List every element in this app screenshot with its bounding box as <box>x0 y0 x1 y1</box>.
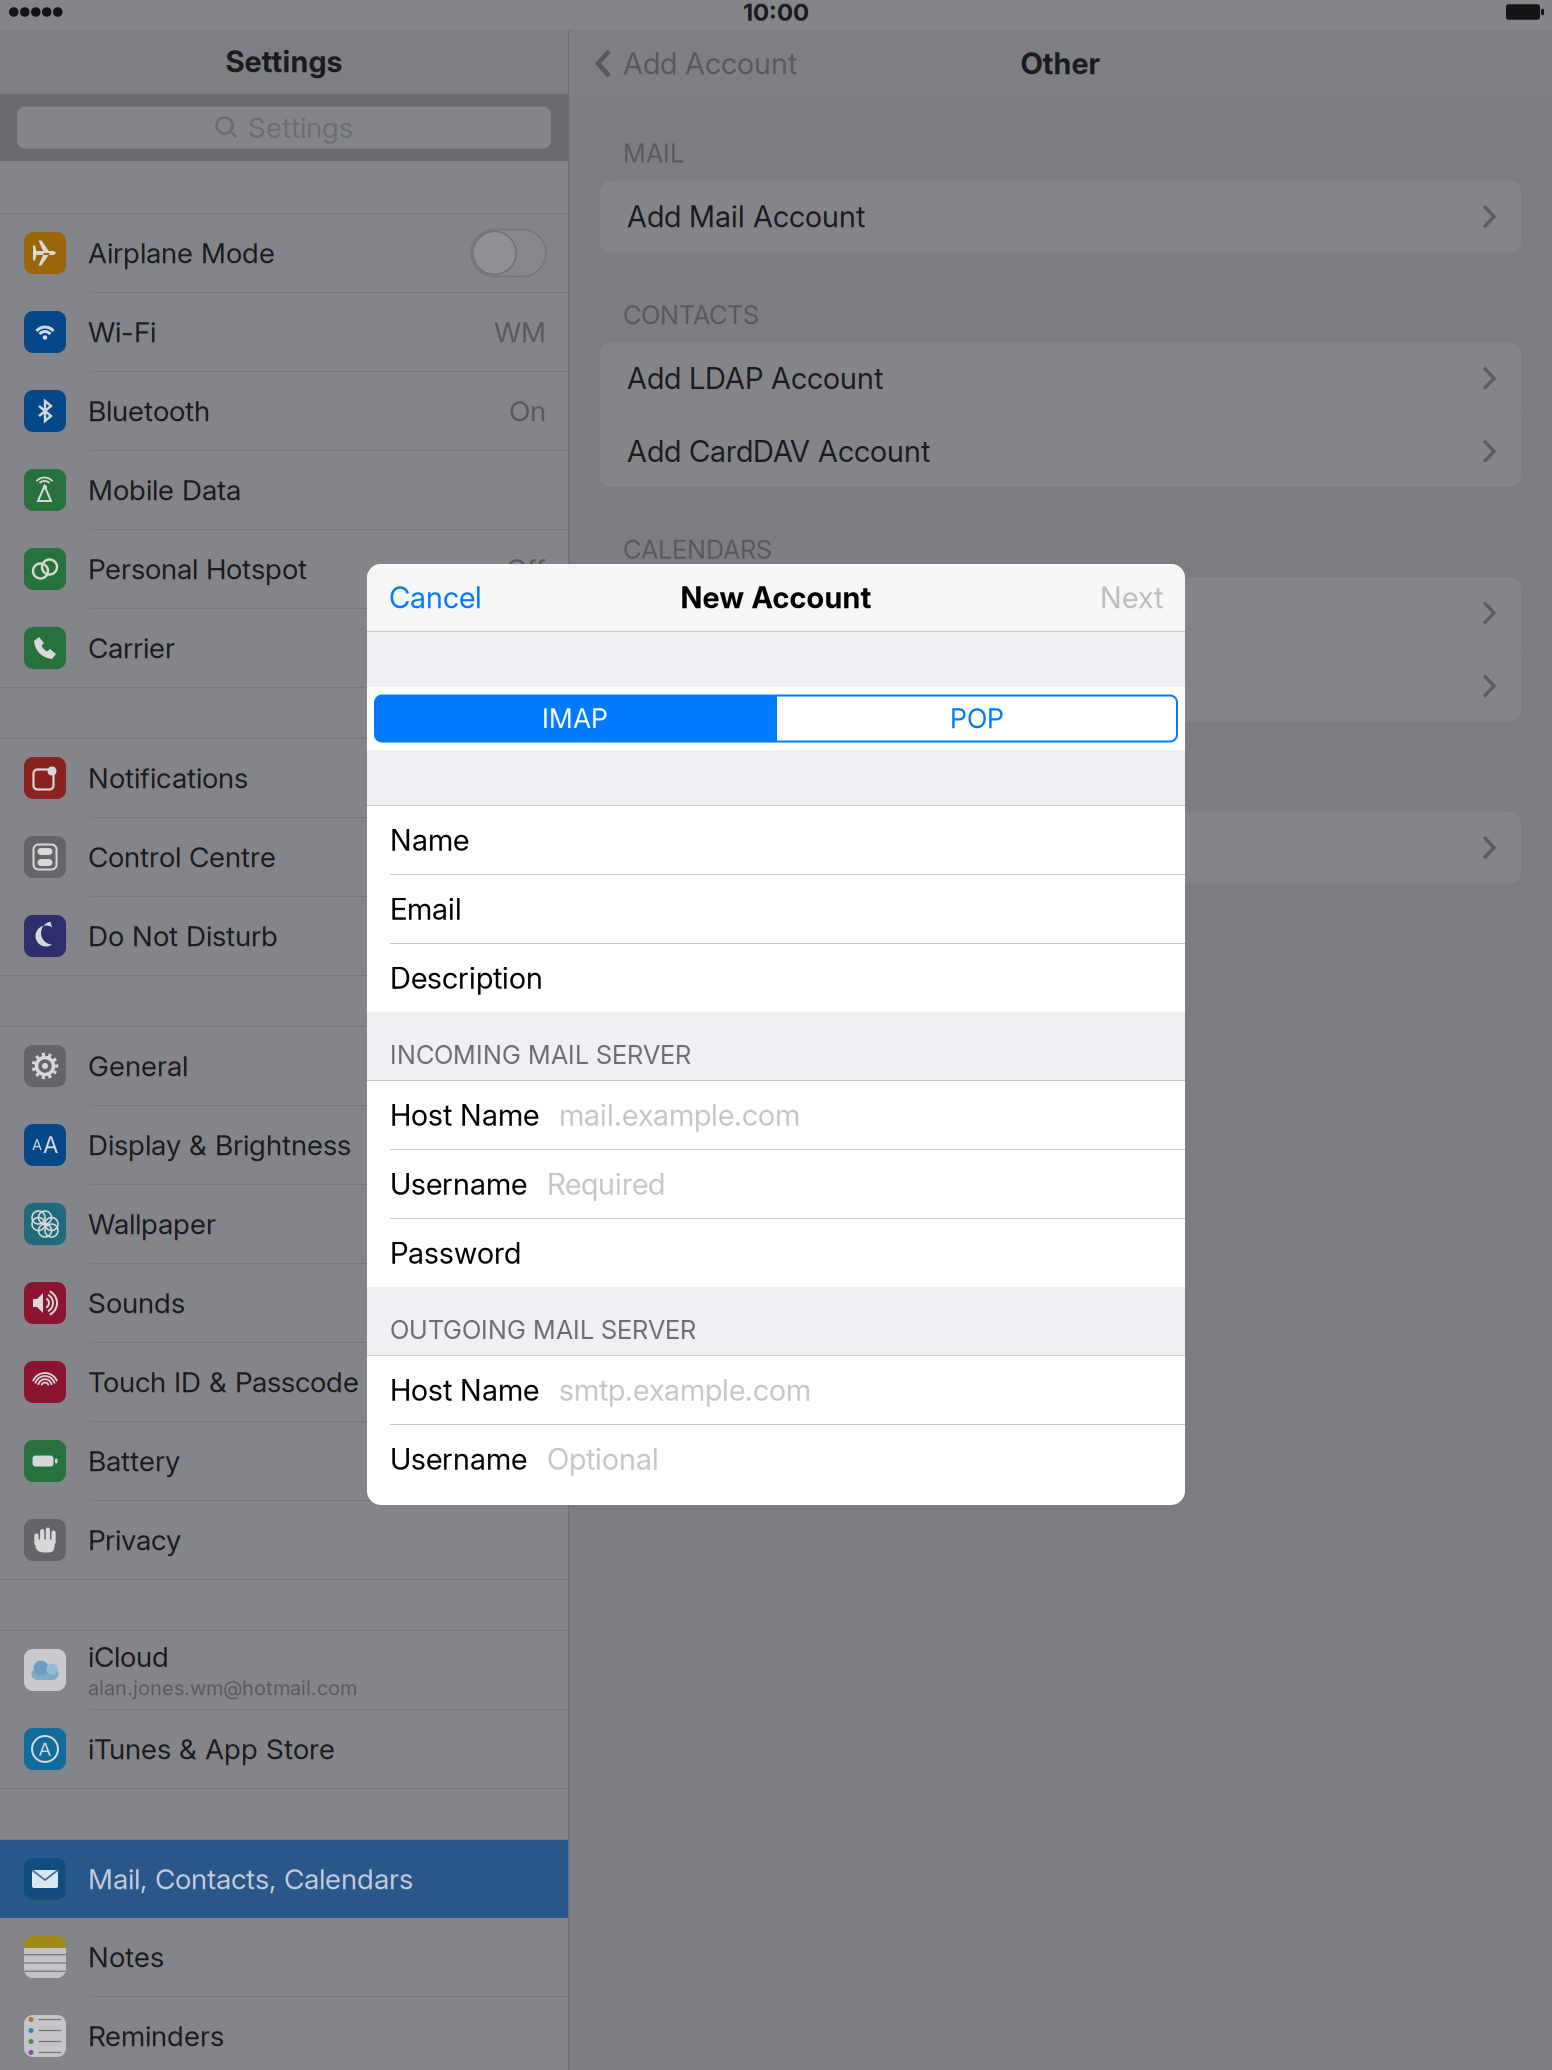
staticText: General <box>88 1049 188 1083</box>
button[interactable]: Add LDAP Account <box>600 342 1521 414</box>
staticText: Optional <box>547 1441 659 1477</box>
staticText: Do Not Disturb <box>88 919 278 953</box>
staticText: Reminders <box>88 2019 224 2053</box>
button[interactable]: A <box>0 1106 568 1184</box>
button[interactable]: Settings <box>0 94 568 161</box>
staticText: Settings <box>248 111 353 144</box>
button[interactable]: Add Subscribed Calendar <box>600 650 1521 722</box>
button[interactable]: Add macOS Server Account <box>600 812 1521 884</box>
button[interactable]: Battery <box>0 1422 568 1500</box>
staticText: Wallpaper <box>88 1207 216 1241</box>
staticText: Next <box>1100 580 1163 615</box>
staticText: Carrier <box>88 631 175 665</box>
button[interactable]: Reminders <box>0 1997 568 2070</box>
button[interactable]: A <box>0 1710 568 1788</box>
button[interactable]: POP <box>777 695 1177 741</box>
staticText: Wi-Fi <box>88 315 156 349</box>
staticText: Add Account <box>623 46 797 81</box>
button[interactable]: Privacy <box>0 1501 568 1579</box>
staticText: Username <box>390 1166 527 1202</box>
staticText: Display & Brightness <box>88 1128 351 1162</box>
staticText: Airplane Mode <box>88 236 275 270</box>
staticText: Notifications <box>88 761 248 795</box>
staticText: New Account <box>680 580 871 615</box>
staticText: Touch ID & Passcode <box>88 1365 359 1399</box>
staticText: POP <box>950 702 1004 735</box>
staticText: A <box>43 1131 58 1159</box>
staticText: IMAP <box>542 702 608 735</box>
button[interactable]: Mail, Contacts, Calendars <box>0 1840 568 1918</box>
staticText: iTunes & App Store <box>88 1732 335 1766</box>
staticText: Bluetooth <box>88 394 210 428</box>
staticText: On <box>509 394 546 428</box>
staticText: Username <box>390 1441 527 1477</box>
staticText: mail.example.com <box>559 1097 800 1133</box>
staticText: Mail, Contacts, Calendars <box>88 1862 413 1896</box>
staticText: CALENDARS <box>623 534 772 565</box>
staticText: Sounds <box>88 1286 185 1320</box>
staticText: Control Centre <box>88 840 276 874</box>
staticText: Cancel <box>389 580 482 615</box>
button[interactable]: Touch ID & Passcode <box>0 1343 568 1421</box>
button[interactable]: Control Centre <box>0 818 568 896</box>
button[interactable]: Sounds <box>0 1264 568 1342</box>
staticText: iCloud <box>88 1640 169 1674</box>
staticText: Host Name <box>390 1097 539 1133</box>
button[interactable]: Next <box>1100 566 1185 629</box>
staticText: Notes <box>88 1940 164 1974</box>
staticText: Email <box>390 891 462 927</box>
button[interactable]: Add Account <box>569 46 797 81</box>
button[interactable]: Wi-Fi <box>0 293 568 371</box>
button[interactable]: Add CalDAV Account <box>600 577 1521 649</box>
staticText: alan.jones.wm@hotmail.com <box>88 1676 357 1700</box>
staticText: smtp.example.com <box>559 1372 811 1408</box>
staticText: CONTACTS <box>623 300 759 330</box>
staticText: Privacy <box>88 1523 181 1557</box>
staticText: WM <box>494 315 546 349</box>
button[interactable]: General <box>0 1027 568 1105</box>
button[interactable]: Add CardDAV Account <box>600 415 1521 487</box>
staticText: A <box>38 1738 51 1760</box>
button[interactable]: Personal Hotspot <box>0 530 568 608</box>
staticText: Host Name <box>390 1372 539 1408</box>
staticText: MAIL <box>623 138 684 169</box>
staticText: Add Subscribed Calendar <box>627 668 968 704</box>
staticText: Description <box>390 960 543 996</box>
staticText: A <box>32 1136 42 1154</box>
button[interactable]: iCloud <box>0 1631 568 1709</box>
button[interactable]: Wallpaper <box>0 1185 568 1263</box>
button[interactable]: Cancel <box>367 566 482 629</box>
button[interactable]: Do Not Disturb <box>0 897 568 975</box>
staticText: Password <box>390 1235 521 1271</box>
staticText: Required <box>547 1166 665 1202</box>
staticText: Add CardDAV Account <box>627 434 930 469</box>
staticText: Battery <box>88 1444 180 1478</box>
staticText: Settings <box>225 44 342 79</box>
button[interactable]: Notifications <box>0 739 568 817</box>
staticText: 10:00 <box>743 0 809 26</box>
staticText: INCOMING MAIL SERVER <box>390 1039 691 1070</box>
staticText: Other <box>1020 46 1100 81</box>
staticText: Add Mail Account <box>627 199 865 234</box>
button[interactable]: Airplane Mode <box>0 214 568 292</box>
staticText: Add LDAP Account <box>627 361 883 396</box>
button[interactable]: IMAP <box>375 695 775 741</box>
staticText: Mobile Data <box>88 473 241 507</box>
button[interactable]: Bluetooth <box>0 372 568 450</box>
staticText: Name <box>390 822 469 858</box>
staticText: OUTGOING MAIL SERVER <box>390 1314 696 1345</box>
button[interactable]: Mobile Data <box>0 451 568 529</box>
staticText: Add CalDAV Account <box>627 595 910 631</box>
button[interactable]: Add Mail Account <box>600 181 1521 253</box>
staticText: Off <box>506 552 546 586</box>
staticText: Personal Hotspot <box>88 552 307 586</box>
button[interactable]: Carrier <box>0 609 568 687</box>
button[interactable]: Notes <box>0 1918 568 1996</box>
